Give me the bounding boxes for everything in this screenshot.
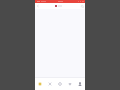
button[interactable]: Home	[55, 5, 62, 7]
button[interactable]: Search	[79, 3, 85, 9]
button[interactable]: Nightlife	[55, 78, 65, 90]
button[interactable]: Back	[35, 3, 40, 9]
button[interactable]: Favourites	[65, 78, 75, 90]
button[interactable]: Delivery	[35, 78, 45, 90]
button[interactable]: Dining	[45, 78, 55, 90]
button[interactable]: Profile	[75, 78, 85, 90]
